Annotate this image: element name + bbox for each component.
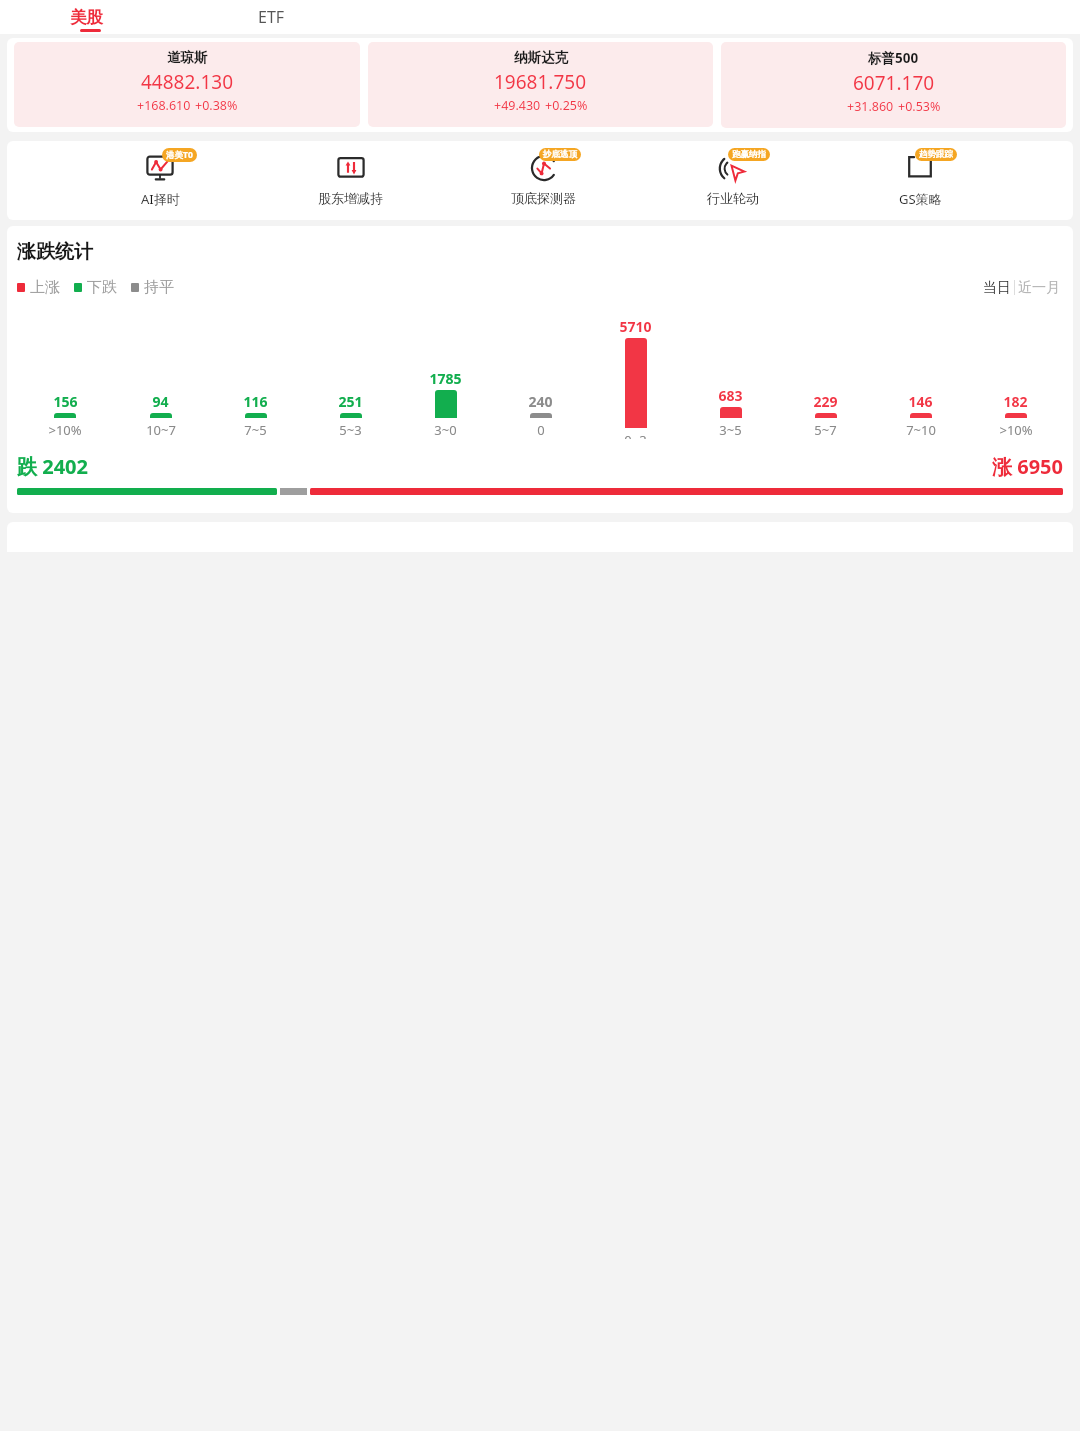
staticText: 229 (813, 392, 838, 411)
button[interactable]: 5710 (588, 317, 683, 439)
staticText: 683 (718, 386, 743, 405)
staticText: 当日 (983, 279, 1011, 297)
staticText: 94 (152, 392, 169, 411)
staticText: 5~7 (814, 421, 837, 439)
button[interactable]: 美股 (60, 5, 113, 30)
staticText: 44882.130 (141, 69, 234, 95)
staticText: +0.53% (898, 98, 941, 115)
staticText: 19681.750 (494, 69, 587, 95)
staticText: 0 (537, 421, 545, 439)
button[interactable]: 道琼斯 (14, 42, 360, 127)
button[interactable]: 156 (17, 392, 113, 439)
button[interactable]: 标普500 (721, 42, 1066, 128)
staticText: 182 (1003, 392, 1028, 411)
staticText: 纳斯达克 (514, 49, 568, 66)
staticText: 标普500 (868, 49, 919, 67)
button[interactable]: 当日 (980, 279, 1014, 297)
button[interactable]: 94 (113, 392, 208, 439)
staticText: +168.610 (137, 97, 191, 114)
staticText: 156 (53, 392, 78, 411)
staticText: 3~0 (434, 421, 457, 439)
button[interactable]: 顶底探测器 (507, 151, 580, 206)
staticText: 跑赢纳指 (732, 149, 766, 160)
button[interactable]: GS策略 (887, 151, 953, 208)
button[interactable]: 240 (493, 392, 588, 439)
staticText: 10~7 (146, 421, 176, 439)
button[interactable]: 683 (683, 386, 778, 439)
staticText: 美股 (70, 7, 103, 28)
staticText: +49.430 (494, 97, 541, 114)
button[interactable]: 146 (873, 392, 968, 439)
other: AI择时 (145, 153, 175, 183)
staticText: 趋势跟踪 (919, 149, 953, 160)
staticText: >10% (999, 421, 1033, 439)
staticText: 行业轮动 (707, 190, 759, 206)
staticText: 抄底逃顶 (543, 149, 577, 160)
staticText: 顶底探测器 (511, 190, 576, 206)
button[interactable]: 近一月 (1015, 279, 1063, 297)
button[interactable]: AI择时 (127, 151, 193, 208)
staticText: 3~5 (719, 421, 742, 439)
staticText: 146 (908, 392, 933, 411)
staticText: 5~3 (339, 421, 362, 439)
staticText: 7~5 (244, 421, 267, 439)
staticText: 251 (338, 392, 363, 411)
staticText: +31.860 (847, 98, 894, 115)
button[interactable]: ETF (248, 4, 295, 30)
button[interactable]: 116 (208, 392, 303, 439)
button[interactable]: 182 (968, 392, 1063, 439)
staticText: 持平 (144, 278, 174, 297)
button[interactable]: 251 (303, 392, 398, 439)
staticText: 5710 (619, 317, 652, 336)
staticText: 7~10 (906, 421, 936, 439)
staticText: 涨跌统计 (17, 240, 93, 264)
staticText: 240 (528, 392, 553, 411)
other: 股东增减持 (336, 153, 366, 183)
staticText: 下跌 (87, 278, 117, 297)
other: 顶底探测器 (529, 153, 559, 183)
staticText: 上涨 (30, 278, 60, 297)
staticText: 港美T0 (166, 149, 193, 161)
staticText: +0.38% (195, 97, 238, 114)
staticText: 116 (243, 392, 268, 411)
staticText: >10% (48, 421, 82, 439)
staticText: 涨 6950 (992, 453, 1063, 480)
staticText: 0~3 (624, 431, 647, 439)
staticText: 股东增减持 (318, 190, 383, 206)
staticText: 1785 (429, 369, 462, 388)
staticText: GS策略 (899, 190, 942, 208)
button[interactable]: 行业轮动 (700, 151, 766, 206)
button[interactable]: 229 (778, 392, 873, 439)
staticText: 近一月 (1018, 279, 1060, 297)
staticText: ETF (258, 6, 285, 28)
other: 行业轮动 (718, 153, 748, 183)
button[interactable]: 1785 (398, 369, 493, 439)
staticText: +0.25% (545, 97, 588, 114)
button[interactable]: 纳斯达克 (368, 42, 713, 127)
staticText: 跌 2402 (17, 453, 88, 480)
button[interactable]: 股东增减持 (314, 151, 387, 206)
staticText: 6071.170 (853, 70, 935, 96)
other: GS策略 (905, 153, 935, 183)
staticText: 道琼斯 (167, 49, 208, 66)
staticText: AI择时 (141, 190, 180, 208)
